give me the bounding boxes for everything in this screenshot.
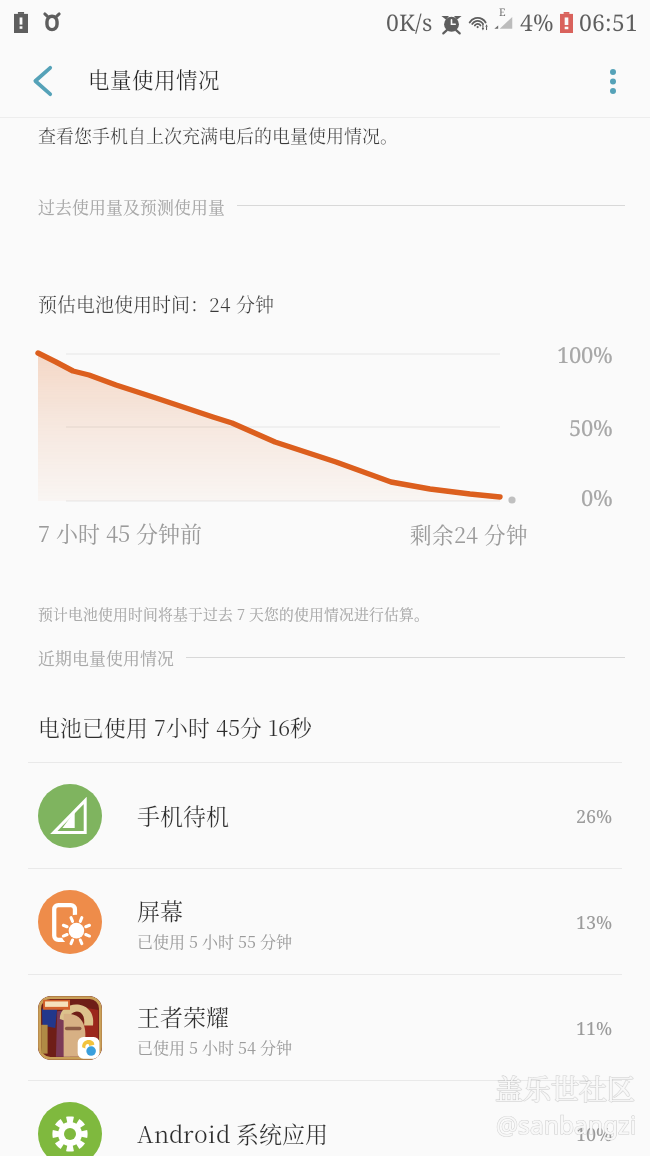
button[interactable]: Back [19,57,67,105]
button[interactable] [0,975,650,1080]
button[interactable] [0,869,650,974]
button[interactable] [0,763,650,868]
button[interactable] [0,1081,650,1156]
button[interactable]: More options [590,58,636,104]
